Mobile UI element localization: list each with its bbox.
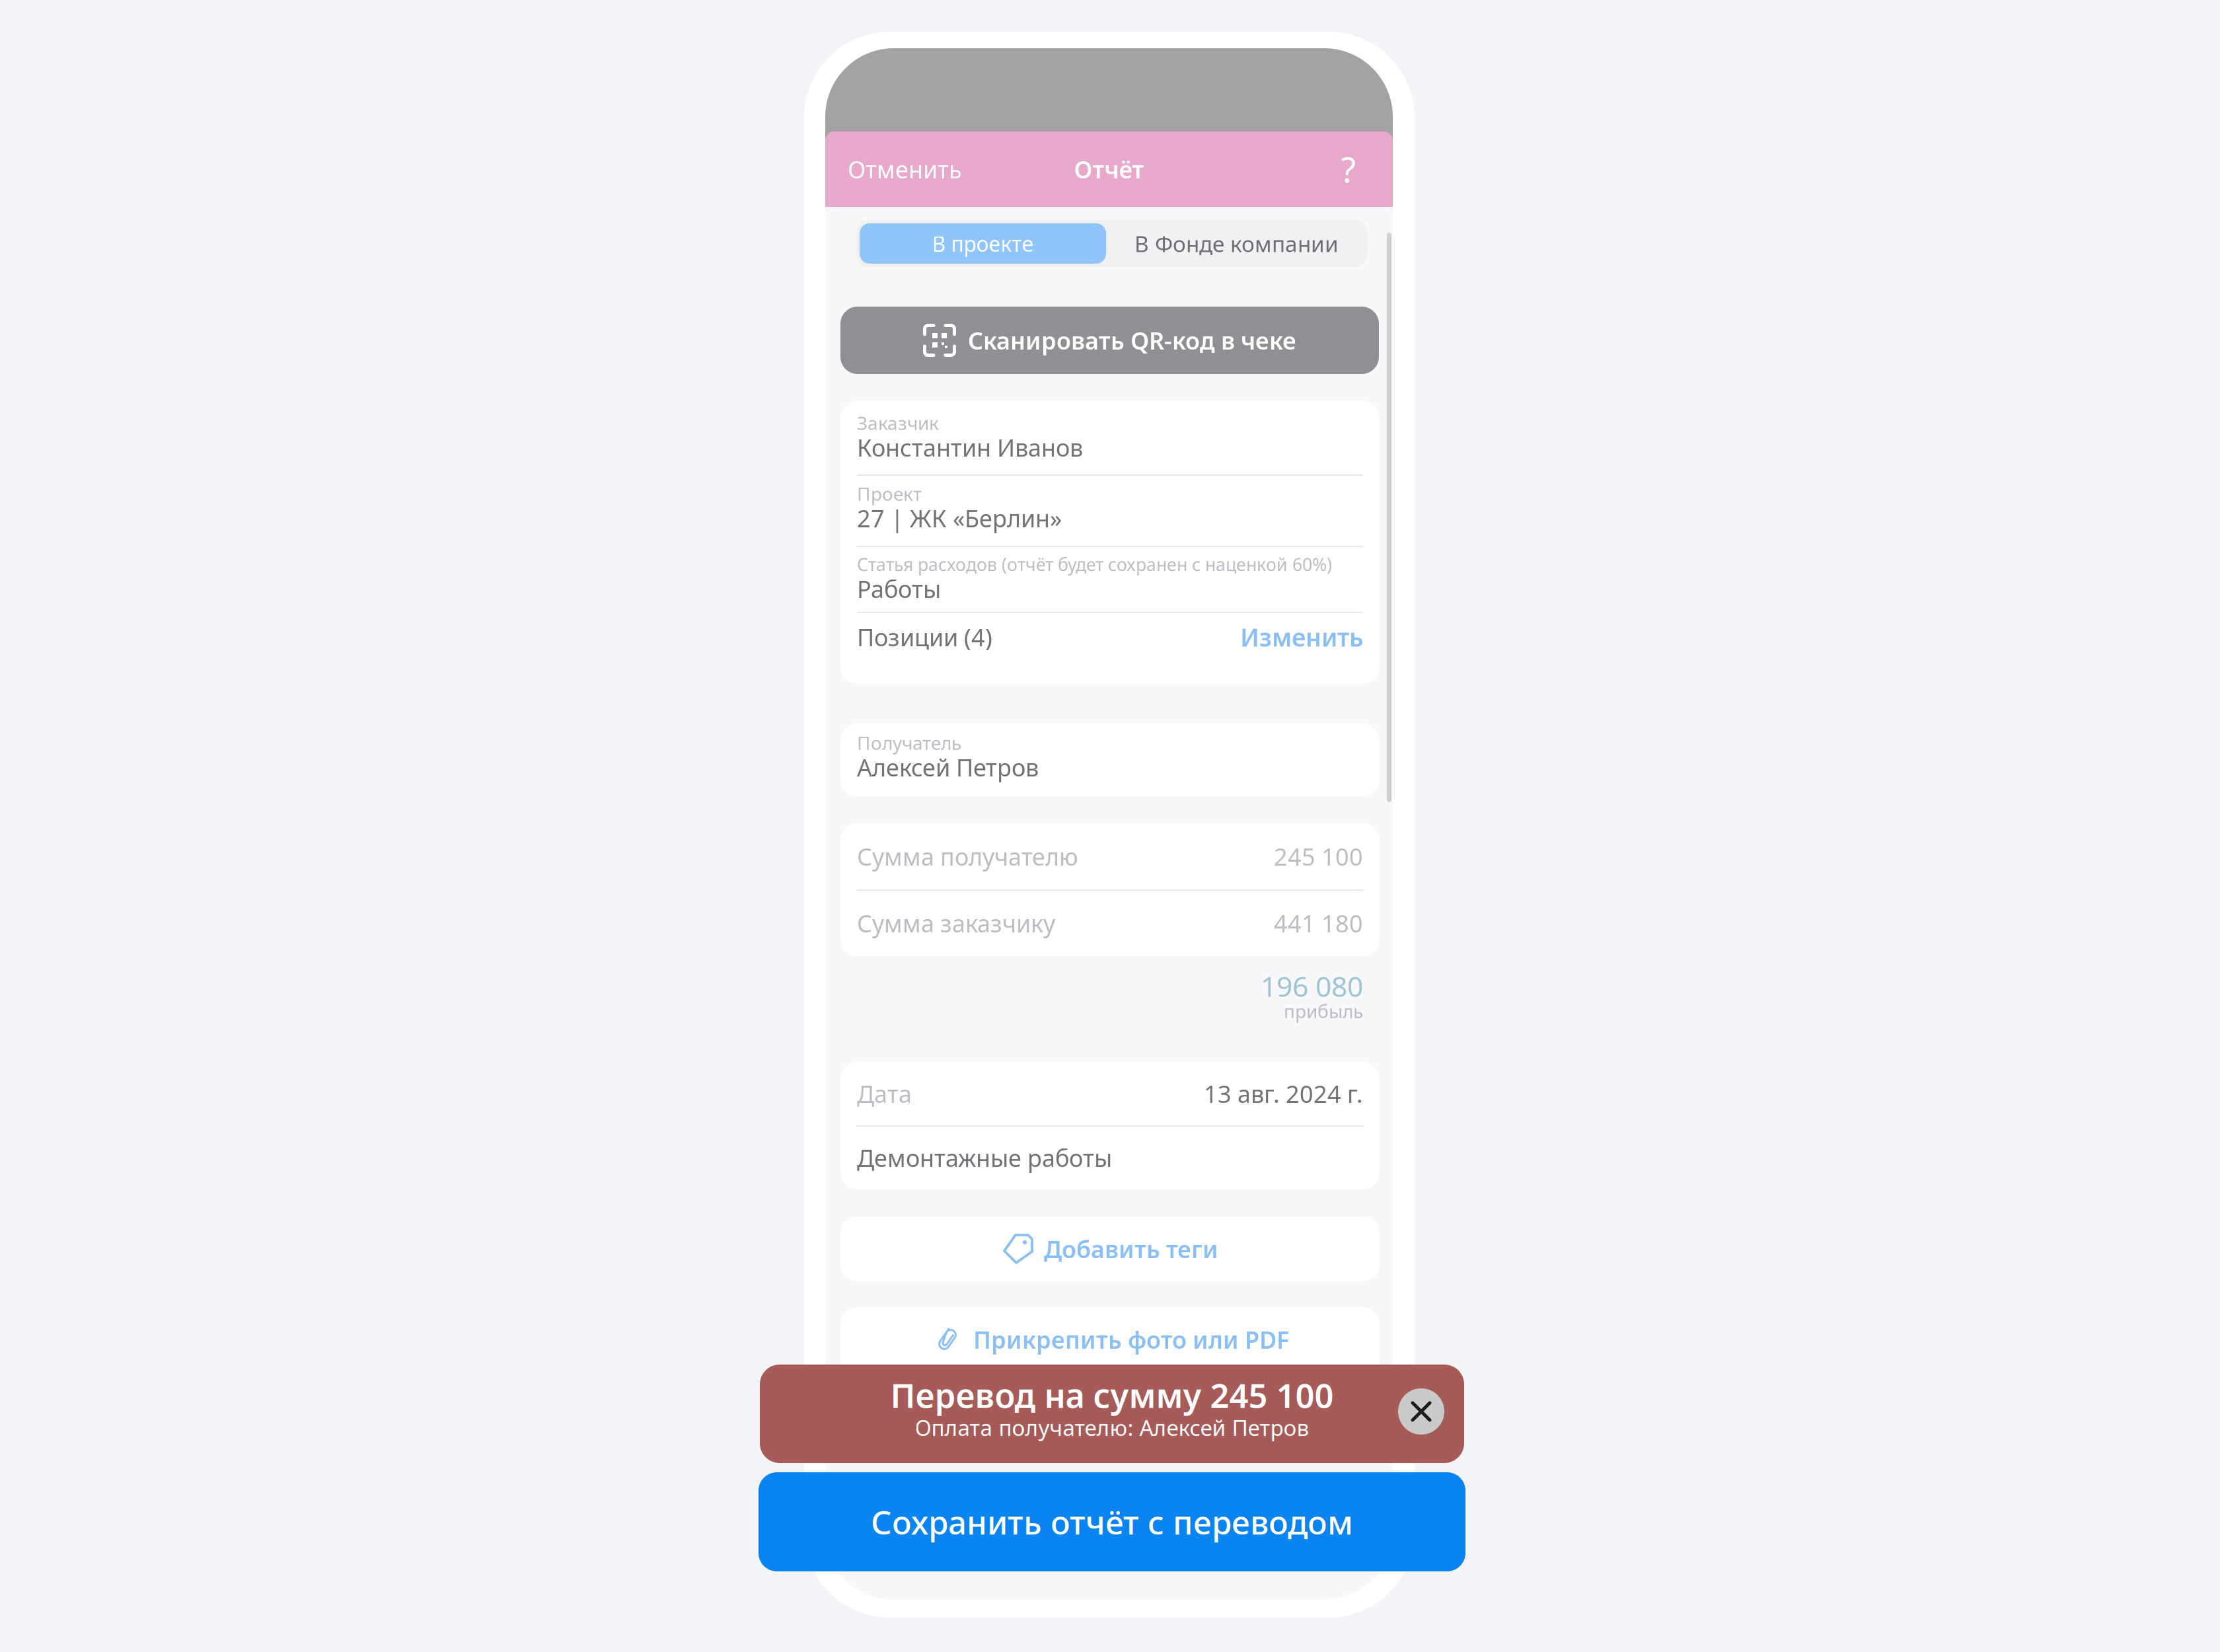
staticText: Дата (857, 1078, 912, 1109)
staticText: Работы (857, 573, 941, 605)
staticText: Проект (857, 481, 922, 506)
staticText: Прикрепить фото или PDF (973, 1324, 1289, 1355)
staticText: Сумма заказчику (857, 907, 1055, 939)
staticText: Демонтажные работы (857, 1142, 1112, 1174)
staticText: прибыль (1284, 999, 1363, 1023)
button[interactable]: Добавить теги (840, 1217, 1380, 1281)
button[interactable]: Сохранить отчёт с переводом (758, 1472, 1465, 1571)
staticText: Изменить (1240, 621, 1363, 653)
staticText: Алексей Петров (857, 751, 1039, 783)
button[interactable]: В проекте (860, 223, 1106, 264)
button[interactable]: В Фонде компании (1109, 223, 1364, 264)
button[interactable]: Позиции (4) (857, 617, 1363, 657)
staticText: Заказчик (857, 411, 939, 435)
staticText: Получатель (857, 730, 961, 755)
staticText: Константин Иванов (857, 432, 1083, 463)
staticText: Статья расходов (отчёт будет сохранен с … (857, 553, 1332, 576)
staticText: В Фонде компании (1134, 229, 1339, 258)
button[interactable]: Help (1319, 131, 1378, 207)
staticText: Отчёт (1074, 153, 1144, 185)
staticText: В проекте (932, 229, 1034, 258)
button[interactable]: Сканировать QR-код в чеке (840, 307, 1379, 374)
staticText: 13 авг. 2024 г. (1204, 1078, 1363, 1109)
staticText: Перевод на сумму 245 100 (890, 1373, 1334, 1417)
staticText: Сохранить отчёт с переводом (871, 1500, 1353, 1543)
staticText: Отменить (848, 153, 962, 185)
staticText: 245 100 (1274, 841, 1363, 872)
staticText: Оплата получателю: Алексей Петров (915, 1413, 1309, 1442)
staticText: 441 180 (1274, 907, 1363, 939)
staticText: Сумма получателю (857, 841, 1078, 872)
button[interactable]: Отменить (848, 131, 1033, 207)
button[interactable]: Close (1398, 1388, 1444, 1435)
staticText: 27 | ЖК «Берлин» (857, 502, 1062, 534)
staticText: ? (1341, 146, 1356, 192)
button[interactable]: Прикрепить фото или PDF (840, 1307, 1380, 1401)
staticText: Добавить теги (1044, 1233, 1218, 1265)
staticText: Сканировать QR-код в чеке (968, 325, 1296, 356)
staticText: 196 080 (1261, 967, 1363, 1005)
staticText: Позиции (4) (857, 621, 992, 653)
